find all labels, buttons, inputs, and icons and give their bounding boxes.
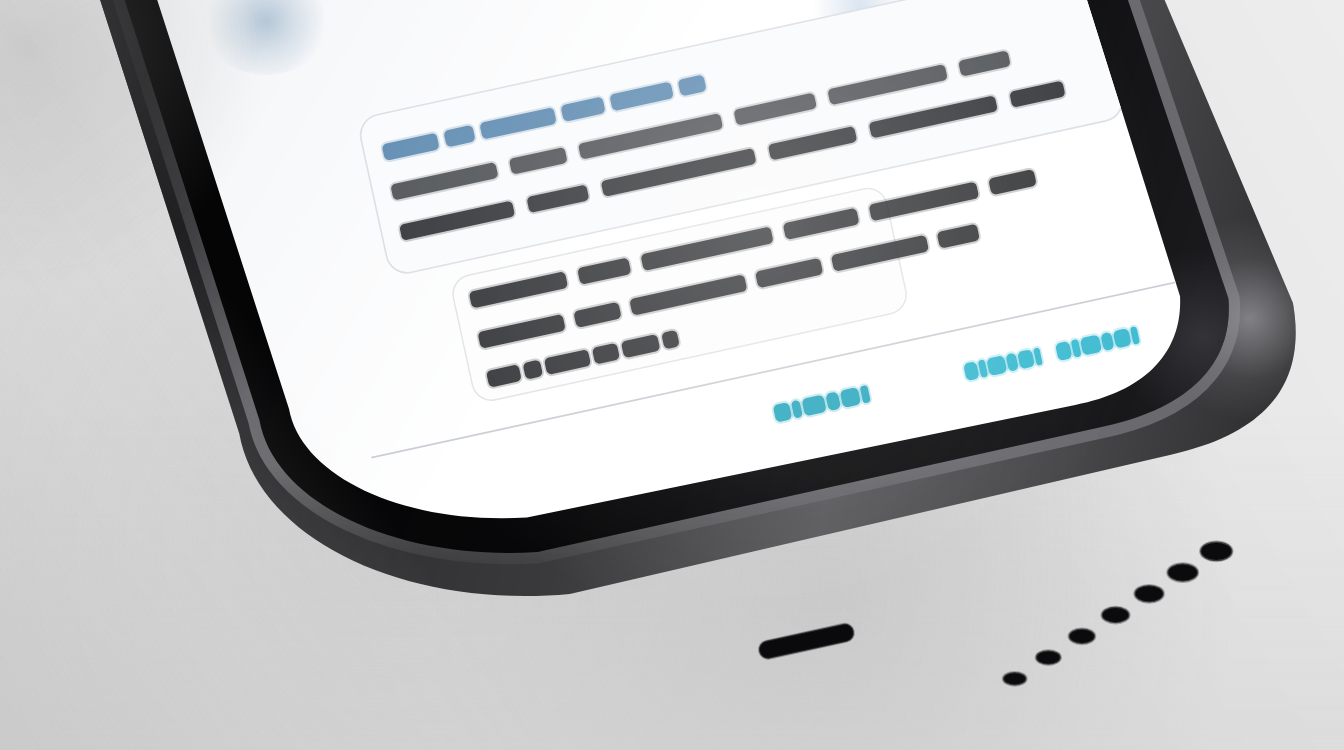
other: Dialog actions: [0, 0, 1344, 750]
button[interactable]: Cancel: [0, 0, 1344, 750]
other: Phone showing a confirmation dialog: [0, 0, 1344, 750]
